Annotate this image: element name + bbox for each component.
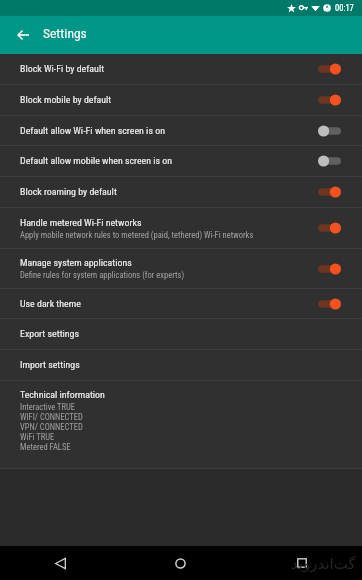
button[interactable]: Back [0, 16, 45, 54]
button[interactable]: Recents [241, 546, 362, 580]
staticText: گت‌اندروید [291, 555, 356, 572]
staticText: Default allow Wi-Fi when screen is on [20, 125, 165, 137]
button[interactable]: Home [120, 546, 241, 580]
staticText: Technical information [20, 389, 105, 401]
staticText: WiFi TRUE [20, 432, 55, 442]
button[interactable]: Default allow Wi-Fi when screen is on [0, 116, 362, 145]
staticText: 00:17 [335, 3, 354, 13]
staticText: Export settings [20, 328, 80, 340]
staticText: WIFI/ CONNECTED [20, 412, 83, 422]
button[interactable]: Manage system applications [0, 249, 362, 288]
staticText: Metered FALSE [20, 442, 71, 452]
button[interactable]: Import settings [0, 350, 362, 380]
button[interactable]: Block Wi-Fi by default [0, 54, 362, 84]
staticText: VPN/ CONNECTED [20, 422, 83, 432]
button[interactable]: Block roaming by default [0, 177, 362, 207]
staticText: Import settings [20, 359, 80, 371]
staticText: Block roaming by default [20, 186, 117, 198]
staticText: Handle metered Wi-Fi networks [20, 217, 142, 229]
button[interactable]: Default allow mobile when screen is on [0, 146, 362, 176]
button[interactable]: Block mobile by default [0, 85, 362, 115]
button[interactable]: Handle metered Wi-Fi networks [0, 208, 362, 248]
staticText: Apply mobile network rules to metered (p… [20, 230, 254, 240]
staticText: Manage system applications [20, 257, 132, 269]
staticText: Block Wi-Fi by default [20, 63, 105, 75]
staticText: Settings [43, 25, 87, 41]
staticText: Use dark theme [20, 298, 81, 310]
staticText: Interactive TRUE [20, 402, 75, 412]
staticText: Default allow mobile when screen is on [20, 155, 173, 167]
staticText: Define rules for system applications (fo… [20, 270, 185, 280]
button[interactable]: Export settings [0, 319, 362, 349]
button[interactable]: Use dark theme [0, 289, 362, 318]
staticText: Block mobile by default [20, 94, 112, 106]
button[interactable]: Back [0, 546, 120, 580]
